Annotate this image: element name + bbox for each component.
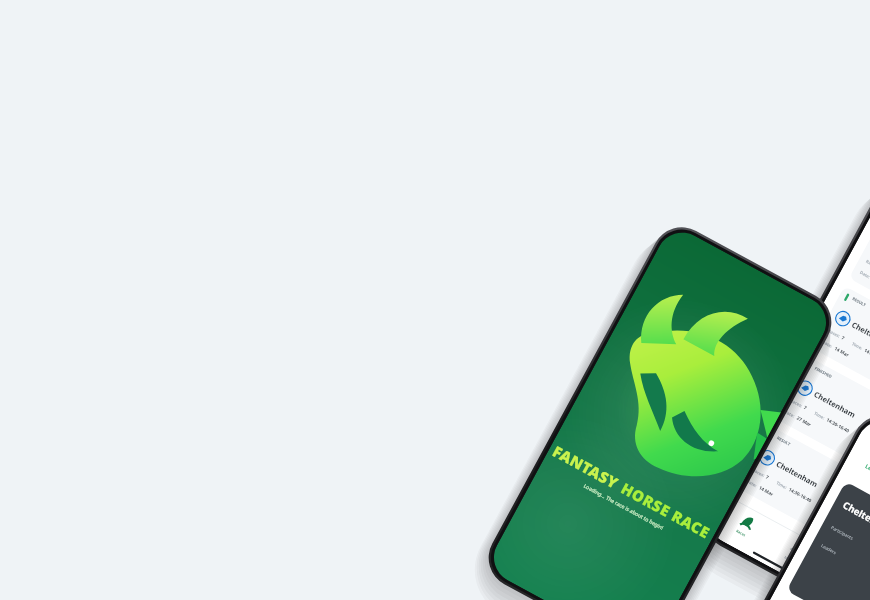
- button[interactable]: Fantasy Horse Race app mockups: [0, 0, 870, 600]
